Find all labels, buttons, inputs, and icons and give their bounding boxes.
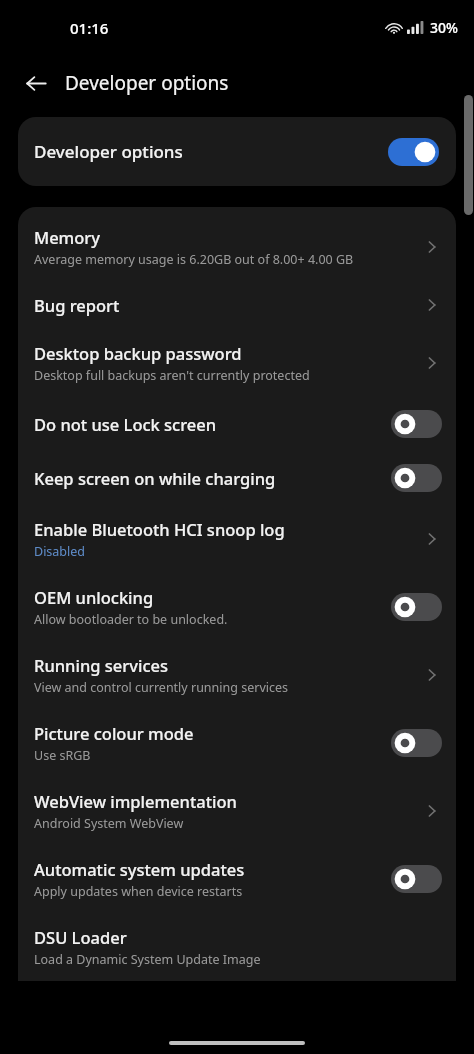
button[interactable]: OEM unlocking bbox=[18, 573, 456, 641]
staticText: WebView implementation bbox=[34, 790, 237, 812]
staticText: Memory bbox=[34, 226, 101, 248]
staticText: Developer options bbox=[34, 140, 183, 163]
staticText: Apply updates when device restarts bbox=[34, 883, 243, 900]
button[interactable]: Memory bbox=[18, 213, 456, 281]
staticText: Automatic system updates bbox=[34, 858, 245, 880]
button[interactable]: Running services bbox=[18, 641, 456, 709]
staticText: Average memory usage is 6.20GB out of 8.… bbox=[34, 251, 354, 268]
staticText: Keep screen on while charging bbox=[34, 467, 276, 489]
button[interactable]: Enable Bluetooth HCI snoop log bbox=[18, 505, 456, 573]
button[interactable]: Do not use Lock screen bbox=[18, 397, 456, 451]
staticText: Allow bootloader to be unlocked. bbox=[34, 611, 228, 628]
staticText: View and control currently running servi… bbox=[34, 679, 289, 696]
staticText: Bug report bbox=[34, 294, 120, 316]
staticText: OEM unlocking bbox=[34, 586, 154, 608]
button[interactable]: Developer options bbox=[18, 117, 456, 186]
staticText: 01:16 bbox=[70, 18, 109, 38]
staticText: Do not use Lock screen bbox=[34, 413, 217, 435]
staticText: Picture colour mode bbox=[34, 722, 194, 744]
staticText: Enable Bluetooth HCI snoop log bbox=[34, 518, 285, 540]
staticText: Running services bbox=[34, 654, 168, 676]
button[interactable]: Picture colour mode bbox=[18, 709, 456, 777]
button[interactable]: Desktop backup password bbox=[18, 329, 456, 397]
staticText: Android System WebView bbox=[34, 815, 184, 832]
staticText: Use sRGB bbox=[34, 747, 91, 764]
staticText: Load a Dynamic System Update Image bbox=[34, 951, 261, 968]
button[interactable]: Back bbox=[17, 64, 55, 102]
button[interactable]: Automatic system updates bbox=[18, 845, 456, 913]
staticText: Disabled bbox=[34, 543, 86, 560]
staticText: DSU Loader bbox=[34, 926, 127, 948]
button[interactable]: Bug report bbox=[18, 281, 456, 329]
staticText: Desktop backup password bbox=[34, 342, 242, 364]
button[interactable]: DSU Loader bbox=[18, 913, 456, 981]
staticText: 30% bbox=[430, 18, 458, 37]
button[interactable]: Keep screen on while charging bbox=[18, 451, 456, 505]
staticText: Desktop full backups aren't currently pr… bbox=[34, 367, 310, 384]
button[interactable]: WebView implementation bbox=[18, 777, 456, 845]
staticText: Developer options bbox=[65, 70, 229, 96]
